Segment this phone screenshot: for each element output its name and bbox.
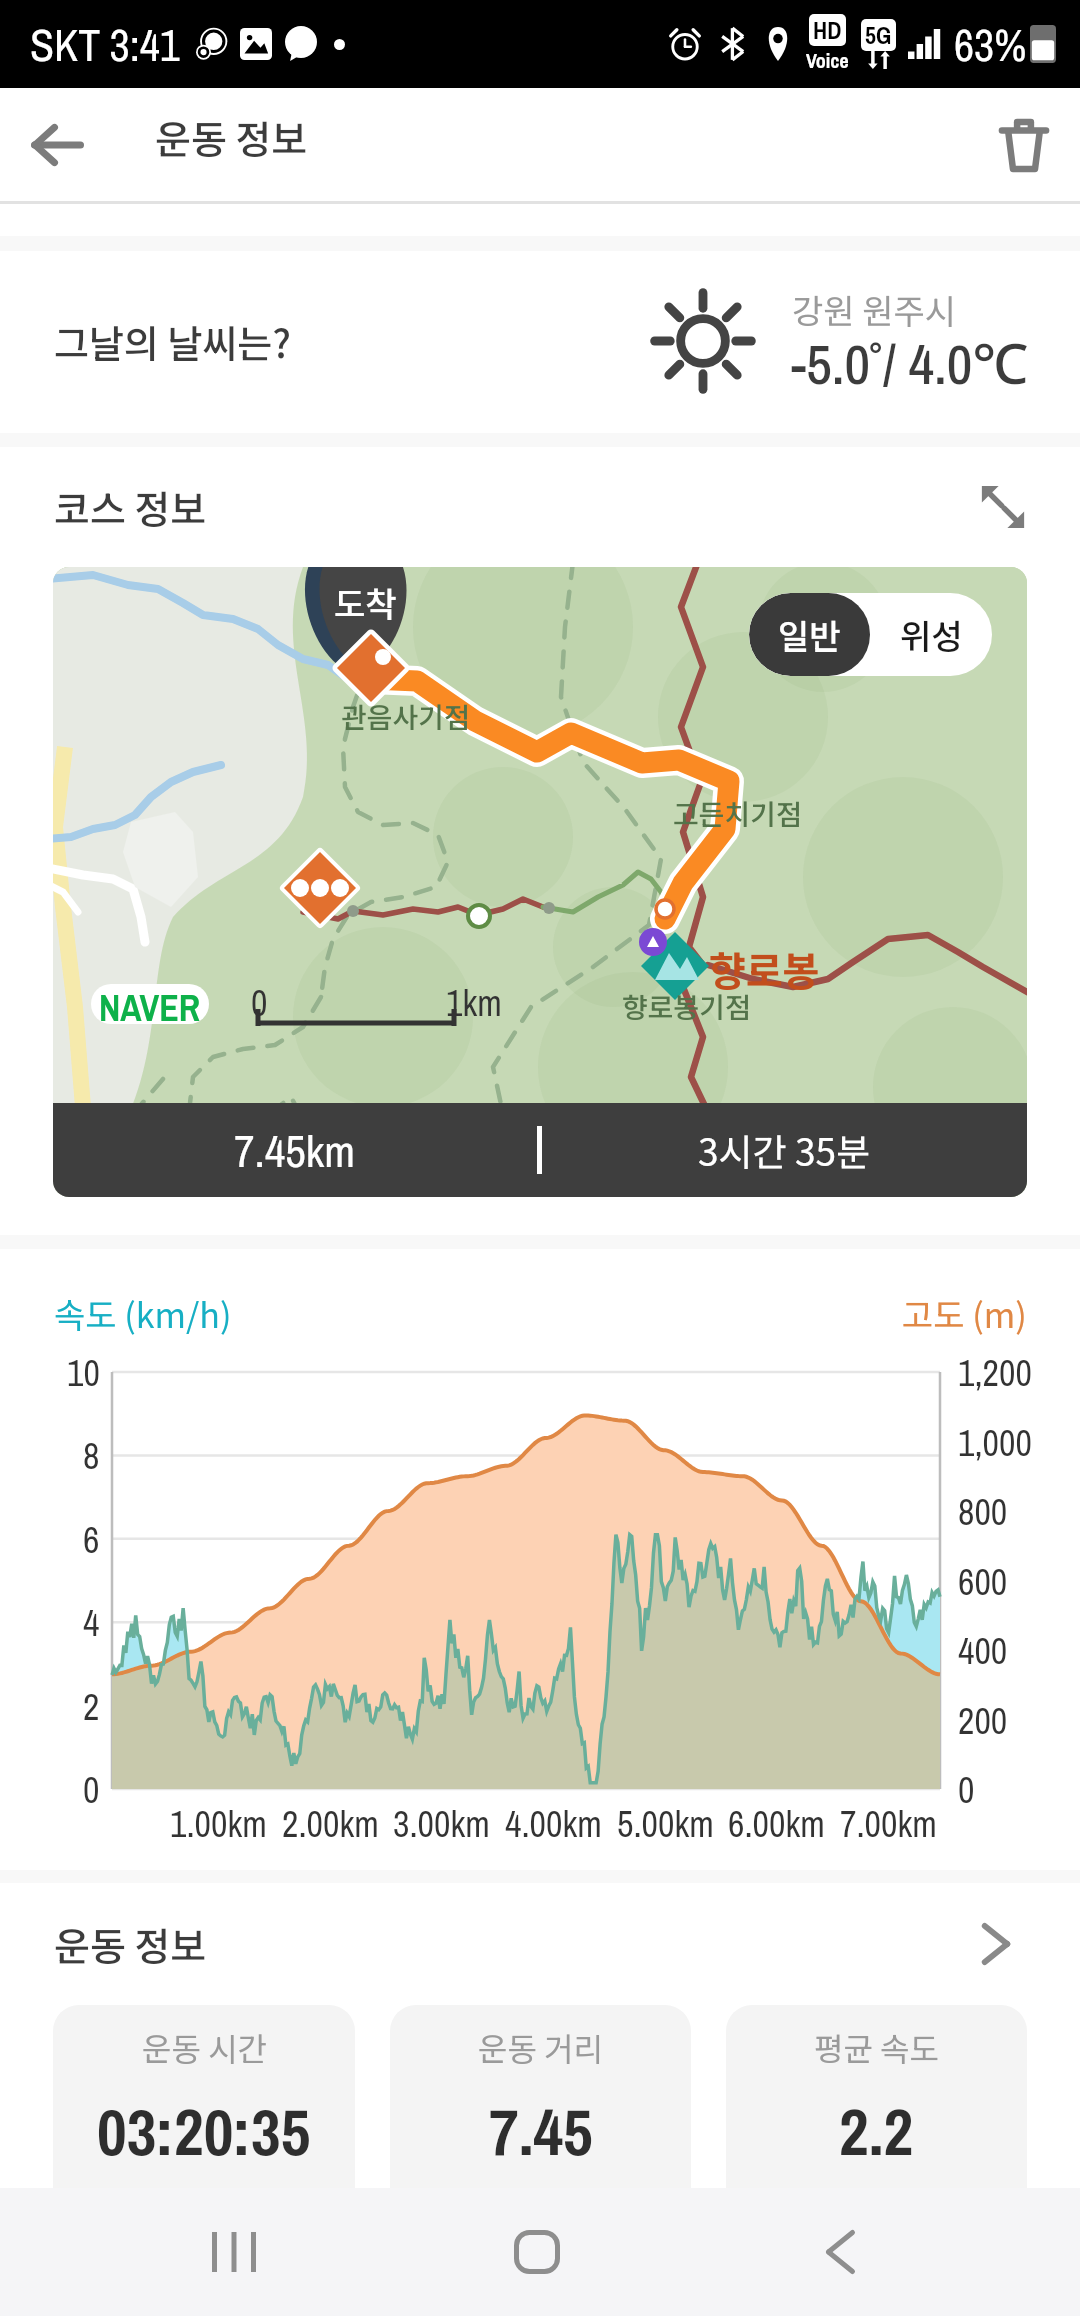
staticText: 3.00km (393, 1800, 490, 1848)
staticText: 운동 정보 (54, 1916, 207, 1972)
staticText: 4 (83, 1599, 100, 1647)
staticText: 평균 속도 (814, 2024, 939, 2070)
staticText: 7.45 (489, 2088, 593, 2176)
staticText: HD (813, 14, 842, 46)
staticText: -5.0˚ / 4.0℃ (791, 324, 1029, 401)
staticText: 2.2 (839, 2088, 914, 2176)
staticText: 운동 정보 (155, 109, 308, 165)
staticText: 운동 시간 (142, 2024, 267, 2070)
staticText: 5G (865, 19, 892, 51)
staticText: 6 (83, 1516, 100, 1564)
staticText: 향로봉기점 (622, 986, 751, 1027)
staticText: 고도 (m) (902, 1289, 1027, 1338)
button[interactable]: 일반 (749, 593, 870, 676)
button[interactable]: Delete (967, 88, 1080, 201)
button[interactable]: 위성 (870, 593, 992, 676)
staticText: 향로봉 (709, 940, 820, 998)
staticText: 4.00km (505, 1800, 602, 1848)
staticText: 7.45km (234, 1120, 356, 1181)
button[interactable]: 운동 시간 (53, 2005, 355, 2205)
button[interactable]: 운동 거리 (390, 2005, 691, 2205)
button[interactable]: Expand map (958, 462, 1048, 552)
staticText: SKT 3:41 (30, 15, 180, 74)
staticText: 6.00km (728, 1800, 825, 1848)
button[interactable]: Home (417, 2188, 657, 2316)
staticText: 600 (958, 1558, 1008, 1606)
staticText: 강원 원주시 (792, 285, 957, 334)
staticText: 800 (958, 1488, 1008, 1536)
staticText: 0 (83, 1766, 100, 1814)
staticText: 7.00km (840, 1800, 937, 1848)
button[interactable]: 그날의 날씨는? (0, 251, 1080, 433)
staticText: 1km (446, 979, 502, 1027)
staticText: 03:20:35 (97, 2088, 311, 2176)
staticText: 3시간 35분 (698, 1123, 871, 1177)
button[interactable]: 관음사기점 (53, 567, 1027, 1197)
staticText: 속도 (km/h) (54, 1289, 232, 1338)
staticText: 0 (958, 1766, 975, 1814)
staticText: 400 (958, 1627, 1008, 1675)
staticText: 2.00km (282, 1800, 379, 1848)
staticText: 5.00km (617, 1800, 714, 1848)
staticText: Voice (806, 47, 849, 74)
staticText: 운동 거리 (478, 2024, 603, 2070)
staticText: 1,000 (958, 1419, 1032, 1467)
staticText: 63% (954, 15, 1027, 74)
button[interactable]: Recents (114, 2188, 354, 2316)
staticText: 그날의 날씨는? (54, 314, 292, 369)
staticText: 0 (251, 979, 268, 1027)
staticText: 200 (958, 1697, 1008, 1745)
staticText: 1.00km (170, 1800, 267, 1848)
staticText: 위성 (900, 610, 963, 659)
staticText: 일반 (778, 610, 841, 659)
button[interactable]: Back (720, 2188, 960, 2316)
staticText: 8 (83, 1432, 100, 1480)
staticText: NAVER (99, 984, 201, 1024)
staticText: 도착 (334, 578, 397, 627)
staticText: 고든치기점 (673, 793, 802, 834)
staticText: 10 (67, 1349, 100, 1397)
button[interactable]: Back (0, 88, 113, 201)
button[interactable]: 평균 속도 (726, 2005, 1027, 2205)
staticText: 코스 정보 (54, 479, 207, 535)
staticText: 관음사기점 (341, 696, 470, 737)
button[interactable]: 운동 정보 (0, 1883, 1080, 2005)
staticText: 1,200 (958, 1349, 1032, 1397)
staticText: 2 (83, 1683, 100, 1731)
